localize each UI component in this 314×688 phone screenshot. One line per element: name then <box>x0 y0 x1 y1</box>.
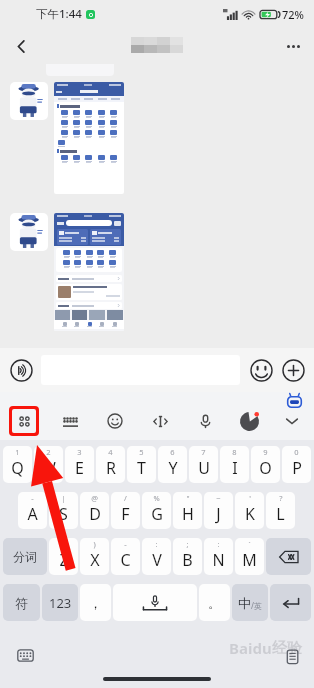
button[interactable]: More options <box>276 29 310 63</box>
staticText: Z <box>59 549 69 571</box>
staticText: / <box>124 493 127 503</box>
staticText: 9 <box>263 447 268 457</box>
button[interactable]: Hide keyboard <box>14 644 36 666</box>
staticText: V <box>152 549 162 571</box>
button[interactable]: 3 <box>65 446 94 483</box>
button[interactable]: - <box>111 538 140 575</box>
button[interactable]: Voice <box>191 407 219 435</box>
staticText: W <box>41 457 56 479</box>
button[interactable]: % <box>142 492 171 529</box>
staticText: ' <box>249 493 251 503</box>
button[interactable]: " <box>173 492 202 529</box>
button[interactable]: ? <box>266 492 295 529</box>
staticText: Q <box>11 457 24 479</box>
staticText: 6 <box>170 447 175 457</box>
staticText: L <box>276 503 285 525</box>
button[interactable] <box>10 82 48 120</box>
button[interactable] <box>54 82 124 194</box>
button[interactable]: Voice input <box>8 357 34 383</box>
staticText: 下午1:44 <box>36 6 82 22</box>
button[interactable]: / <box>111 492 140 529</box>
button[interactable]: ， <box>80 584 111 621</box>
button[interactable]: 6 <box>158 446 187 483</box>
staticText: : <box>217 539 220 549</box>
button[interactable]: Hide toolbar <box>279 408 305 434</box>
staticText: 符 <box>15 595 28 611</box>
staticText: M <box>242 549 257 571</box>
staticText: G <box>151 503 163 525</box>
button[interactable]: @ <box>80 492 109 529</box>
button[interactable]: ' <box>235 492 264 529</box>
button[interactable]: ~ <box>204 492 233 529</box>
staticText: K <box>245 503 255 525</box>
staticText: 分词 <box>13 549 37 564</box>
staticText: 4 <box>108 447 113 457</box>
button[interactable]: 4 <box>96 446 125 483</box>
staticText: N <box>212 549 225 571</box>
staticText: B <box>182 549 193 571</box>
button[interactable]: Keyboard layout <box>56 407 84 435</box>
staticText: 3 <box>77 447 82 457</box>
staticText: Baidu <box>229 638 272 658</box>
button[interactable] <box>54 213 124 331</box>
button[interactable]: Enter <box>270 584 311 621</box>
button[interactable]: | <box>49 492 78 529</box>
staticText: % <box>153 493 160 503</box>
staticText: R <box>106 457 116 479</box>
staticText: 5 <box>139 447 144 457</box>
staticText: ? <box>279 493 283 503</box>
button[interactable]: Keyboard panels <box>12 409 36 433</box>
staticText: ; <box>186 539 189 549</box>
button[interactable]: 中 <box>232 584 268 621</box>
staticText: ) <box>93 539 96 549</box>
staticText: " <box>186 493 190 503</box>
button[interactable]: More functions <box>280 357 306 383</box>
button[interactable]: Space <box>113 584 197 621</box>
button[interactable]: 123 <box>42 584 78 621</box>
button[interactable]: Emoji <box>248 357 274 383</box>
button[interactable]: : <box>142 538 171 575</box>
staticText: 中 <box>238 595 251 611</box>
button[interactable]: ; <box>173 538 202 575</box>
button[interactable]: Assistant <box>236 408 262 434</box>
button[interactable]: Back <box>4 29 38 63</box>
button[interactable]: 8 <box>220 446 249 483</box>
button[interactable]: 2 <box>34 446 63 483</box>
staticText: /英 <box>251 600 262 611</box>
staticText: I <box>232 457 238 479</box>
staticText: 8 <box>232 447 237 457</box>
staticText: T <box>137 457 146 479</box>
staticText: 0 <box>294 447 299 457</box>
button[interactable]: 符 <box>3 584 40 621</box>
staticText: Y <box>168 457 178 479</box>
button[interactable]: 1 <box>3 446 32 483</box>
staticText: 2 <box>46 447 51 457</box>
button[interactable]: : <box>204 538 233 575</box>
staticText: 7 <box>201 447 206 457</box>
staticText: J <box>216 503 221 525</box>
button[interactable]: Text cursor <box>146 407 174 435</box>
button[interactable]: ! <box>49 538 78 575</box>
staticText: S <box>59 503 68 525</box>
staticText: U <box>198 457 210 479</box>
staticText: E <box>75 457 84 479</box>
button[interactable]: - <box>18 492 47 529</box>
staticText: A <box>27 503 38 525</box>
button[interactable]: 5 <box>127 446 156 483</box>
button[interactable]: Backspace <box>266 538 311 575</box>
staticText: H <box>182 503 194 525</box>
button[interactable] <box>10 213 48 251</box>
staticText: - <box>31 493 34 503</box>
button[interactable]: 7 <box>189 446 218 483</box>
button[interactable]: 9 <box>251 446 280 483</box>
button[interactable]: Emoji <box>101 407 129 435</box>
staticText: O <box>259 457 272 479</box>
button[interactable]: 。 <box>199 584 230 621</box>
button[interactable]: ` <box>235 538 264 575</box>
button[interactable]: 分词 <box>3 538 47 575</box>
staticText: ` <box>248 539 251 549</box>
button[interactable]: Clipboard <box>280 645 302 667</box>
button[interactable]: ) <box>80 538 109 575</box>
button[interactable]: 0 <box>282 446 311 483</box>
